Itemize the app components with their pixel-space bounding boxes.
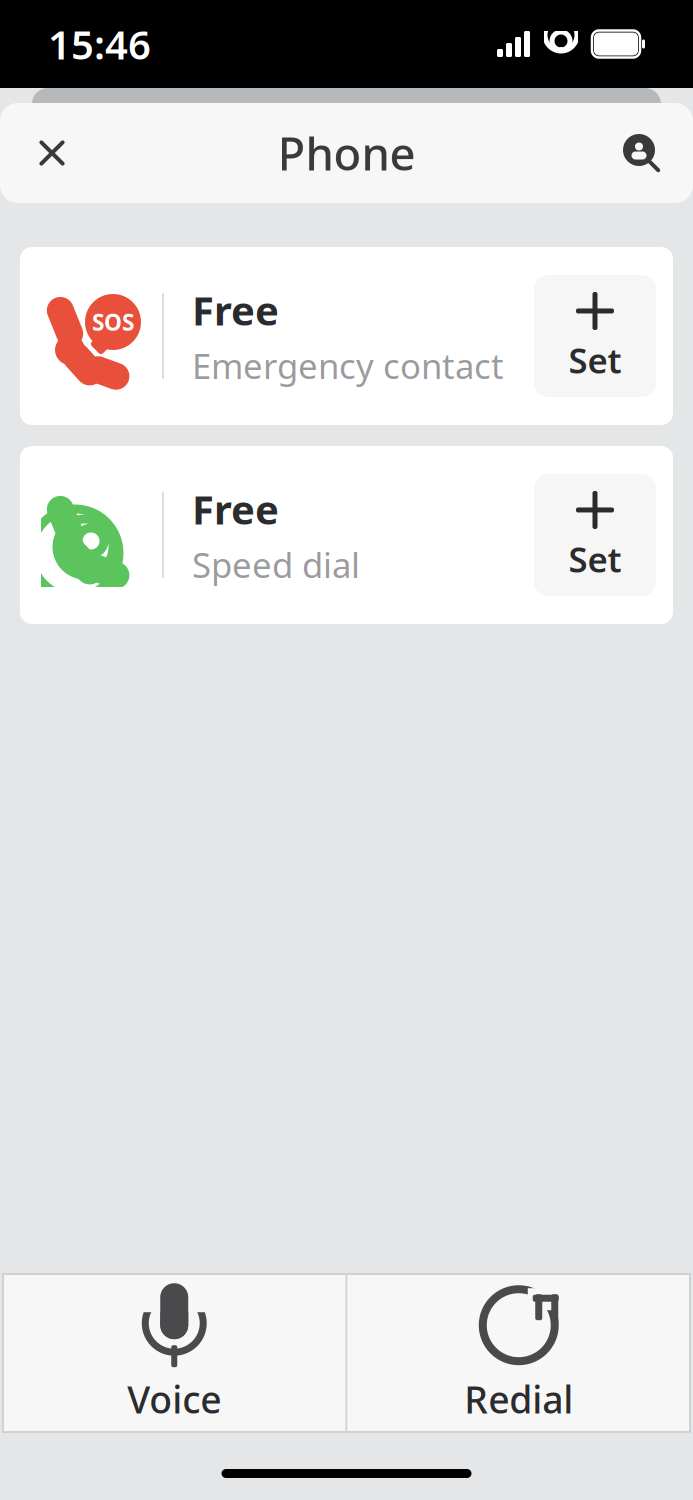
staticText: Emergency contact <box>192 342 504 388</box>
button[interactable]: Voice <box>3 1274 345 1432</box>
staticText: Free <box>192 482 279 535</box>
staticText: SOS <box>92 307 134 337</box>
staticText: Set <box>568 536 621 582</box>
button[interactable]: Set <box>534 474 656 596</box>
button[interactable]: SOS <box>20 247 673 425</box>
staticText: Phone <box>277 123 415 183</box>
button[interactable]: Redial <box>347 1274 690 1432</box>
staticText: Redial <box>464 1374 573 1424</box>
staticText: Free <box>192 283 279 336</box>
staticText: Voice <box>127 1374 221 1424</box>
staticText: 15:46 <box>48 17 151 70</box>
button[interactable]: Close <box>22 123 82 183</box>
staticText: Speed dial <box>192 541 360 587</box>
button[interactable]: Set <box>534 275 656 397</box>
button[interactable]: Free <box>20 446 673 624</box>
staticText: Set <box>568 337 621 383</box>
button[interactable]: Search contacts <box>611 123 671 183</box>
